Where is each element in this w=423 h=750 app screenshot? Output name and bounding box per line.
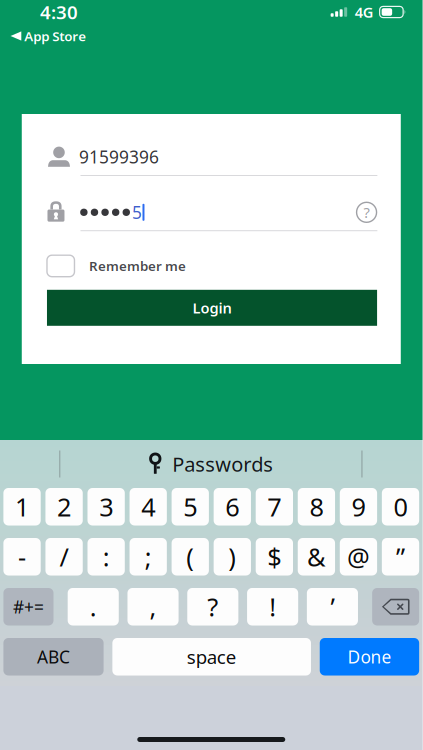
button[interactable]: 4	[130, 488, 167, 525]
staticText: 5	[183, 490, 197, 523]
button[interactable]: 6	[214, 488, 251, 525]
staticText: ?	[207, 590, 218, 623]
staticText: 8	[309, 490, 323, 523]
staticText: Remember me	[89, 257, 186, 275]
staticText: #+=	[13, 595, 44, 618]
button[interactable]: $	[256, 538, 293, 575]
staticText: ?	[364, 203, 370, 222]
button[interactable]: App Store	[0, 27, 96, 45]
button[interactable]: ?	[187, 588, 238, 625]
button[interactable]: space	[112, 638, 311, 675]
button[interactable]: !	[247, 588, 298, 625]
staticText: App Store	[24, 27, 86, 45]
button[interactable]: #+=	[3, 588, 53, 625]
staticText: )	[228, 540, 236, 573]
staticText: 4:30	[40, 0, 78, 24]
staticText: Passwords	[172, 451, 273, 477]
button[interactable]: ’	[307, 588, 358, 625]
staticText: 4G	[355, 2, 374, 22]
button[interactable]: Done	[320, 638, 419, 675]
button[interactable]: ,	[127, 588, 179, 625]
button[interactable]: )	[214, 538, 251, 575]
button[interactable]: @	[340, 538, 377, 575]
staticText: -	[18, 540, 26, 573]
staticText: 91599396	[79, 145, 159, 168]
button[interactable]: &	[298, 538, 335, 575]
button[interactable]: Login	[47, 290, 377, 326]
button[interactable]: ”	[382, 538, 419, 575]
staticText: 7	[267, 490, 281, 523]
staticText: Done	[347, 645, 391, 668]
button[interactable]: Remember me	[47, 255, 377, 277]
staticText: @	[347, 540, 370, 573]
staticText: .	[90, 590, 97, 623]
staticText: 3	[99, 490, 113, 523]
button[interactable]: 2	[45, 488, 83, 525]
staticText: 4	[141, 490, 155, 523]
button[interactable]: 8	[298, 488, 335, 525]
button[interactable]: 1	[3, 488, 41, 525]
button[interactable]: /	[45, 538, 83, 575]
staticText: ”	[396, 540, 405, 573]
button[interactable]: 0	[382, 488, 419, 525]
button[interactable]: .	[68, 588, 119, 625]
button[interactable]: 7	[256, 488, 293, 525]
button[interactable]: 3	[87, 488, 125, 525]
staticText: ’	[330, 590, 334, 623]
button[interactable]: 5	[172, 488, 209, 525]
staticText: $	[267, 540, 281, 573]
staticText: 1	[15, 490, 29, 523]
staticText: !	[269, 590, 276, 623]
button[interactable]: -	[3, 538, 41, 575]
button[interactable]: (	[172, 538, 209, 575]
staticText: 2	[57, 490, 71, 523]
staticText: &	[307, 540, 326, 573]
staticText: Login	[192, 298, 231, 318]
button[interactable]: 9	[340, 488, 377, 525]
staticText: /	[60, 540, 69, 573]
staticText: 9	[351, 490, 365, 523]
staticText: :	[103, 540, 110, 573]
staticText: (	[186, 540, 194, 573]
staticText: ,	[149, 590, 156, 623]
staticText: 5	[132, 201, 142, 224]
staticText: 6	[225, 490, 239, 523]
button[interactable]: ABC	[3, 638, 104, 675]
staticText: 0	[393, 490, 407, 523]
staticText: space	[187, 644, 237, 669]
button[interactable]: Delete	[372, 588, 419, 625]
staticText: ;	[145, 540, 152, 573]
staticText: ABC	[37, 645, 70, 668]
button[interactable]: Passwords	[137, 448, 285, 480]
button[interactable]: ;	[130, 538, 167, 575]
button[interactable]: :	[87, 538, 125, 575]
